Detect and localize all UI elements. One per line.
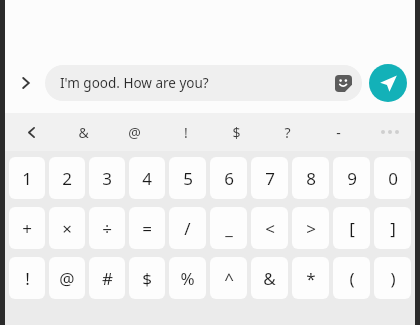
button[interactable]: 1 [9, 157, 45, 199]
staticText: @ [128, 123, 141, 142]
staticText: 2 [62, 167, 72, 190]
staticText: / [184, 217, 191, 240]
staticText: = [142, 217, 152, 240]
staticText: 1 [22, 167, 32, 190]
staticText: * [306, 267, 316, 290]
button[interactable]: I'm good. How are you? [45, 65, 362, 101]
button[interactable]: + [9, 207, 45, 249]
staticText: # [102, 267, 113, 290]
button[interactable]: ! [9, 257, 45, 299]
staticText: % [180, 267, 195, 290]
staticText: @ [59, 267, 75, 290]
button[interactable]: 8 [292, 157, 329, 199]
button[interactable]: @ [49, 257, 85, 299]
button[interactable]: $ [129, 257, 165, 299]
button[interactable]: ( [333, 257, 370, 299]
button[interactable]: [ [333, 207, 370, 249]
button[interactable]: & [57, 113, 109, 151]
button[interactable]: $ [211, 113, 262, 151]
staticText: 6 [224, 167, 234, 190]
button[interactable]: < [251, 207, 288, 249]
staticText: ] [390, 217, 396, 240]
button[interactable]: @ [109, 113, 160, 151]
button[interactable]: = [129, 207, 165, 249]
button[interactable]: _ [210, 207, 247, 249]
button[interactable]: - [313, 113, 364, 151]
staticText: ) [390, 267, 396, 290]
staticText: I'm good. How are you? [60, 74, 209, 92]
button[interactable]: % [169, 257, 206, 299]
button[interactable]: × [49, 207, 85, 249]
button[interactable]: 7 [251, 157, 288, 199]
staticText: > [306, 217, 316, 240]
button[interactable]: ) [374, 257, 411, 299]
button[interactable]: 2 [49, 157, 85, 199]
staticText: ? [284, 123, 291, 142]
staticText: 3 [102, 167, 112, 190]
button[interactable]: Send [369, 64, 407, 102]
staticText: + [22, 217, 32, 240]
staticText: 9 [347, 167, 357, 190]
button[interactable]: 6 [210, 157, 247, 199]
button[interactable]: 3 [89, 157, 125, 199]
button[interactable]: 9 [333, 157, 370, 199]
button[interactable]: > [292, 207, 329, 249]
staticText: & [263, 267, 276, 290]
button[interactable]: * [292, 257, 329, 299]
button[interactable]: ! [160, 113, 211, 151]
button[interactable]: / [169, 207, 206, 249]
staticText: < [265, 217, 275, 240]
button[interactable]: 5 [169, 157, 206, 199]
button[interactable]: Stickers [332, 72, 354, 94]
staticText: & [78, 123, 89, 142]
staticText: × [62, 217, 72, 240]
staticText: $ [142, 267, 152, 290]
button[interactable]: More symbols [364, 113, 415, 151]
staticText: ! [25, 267, 30, 290]
button[interactable]: 0 [374, 157, 411, 199]
staticText: 5 [183, 167, 193, 190]
button[interactable]: # [89, 257, 125, 299]
staticText: 4 [142, 167, 152, 190]
button[interactable]: ? [262, 113, 313, 151]
button[interactable]: Expand options [13, 70, 39, 96]
button[interactable]: ] [374, 207, 411, 249]
staticText: _ [225, 217, 233, 240]
button[interactable]: Previous [5, 113, 57, 151]
staticText: ( [349, 267, 355, 290]
staticText: ! [184, 123, 188, 142]
staticText: 8 [306, 167, 316, 190]
button[interactable]: ^ [210, 257, 247, 299]
button[interactable]: ÷ [89, 207, 125, 249]
staticText: 7 [265, 167, 275, 190]
staticText: - [336, 123, 341, 142]
staticText: [ [349, 217, 355, 240]
staticText: ^ [224, 267, 234, 290]
button[interactable]: 4 [129, 157, 165, 199]
staticText: ÷ [102, 217, 112, 240]
staticText: 0 [388, 167, 398, 190]
button[interactable]: & [251, 257, 288, 299]
staticText: $ [232, 123, 241, 142]
